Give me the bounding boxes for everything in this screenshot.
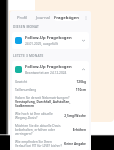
staticText: LETZTE 3 MONATE (13, 54, 44, 58)
staticText: Möchten Sie die aktuelle Dosis beibehalt… (15, 124, 70, 136)
button[interactable]: Mehr (82, 14, 89, 21)
button[interactable]: Fragebögen (54, 14, 79, 21)
staticText: Follow-Up Fragebogen (25, 35, 72, 41)
staticText: Wie empfinden Sie Ihren Verlauf bei FIT … (15, 140, 62, 148)
staticText: DIESEN MONAT (13, 25, 40, 29)
staticText: Journal (36, 15, 51, 21)
button[interactable]: Follow-Up Fragebogen (12, 32, 89, 49)
staticText: Profil (17, 15, 28, 21)
staticText: Taillenumfang (15, 88, 73, 92)
staticText: Keine Angabe (64, 142, 86, 146)
staticText: Haben Sie derzeit Nebenwirkungen? (15, 96, 70, 100)
staticText: 110cm (75, 88, 86, 92)
staticText: 2,5mg/Woche (64, 114, 86, 118)
staticText: 120kg (76, 80, 86, 84)
button[interactable]: Journal (32, 14, 54, 21)
button[interactable]: Profil (12, 14, 32, 21)
button[interactable]: Follow-Up Fragebogen (12, 61, 89, 78)
staticText: Follow-Up Fragebogen (25, 64, 72, 70)
staticText: Beantwortet am 24.12.2024 (25, 71, 67, 75)
staticText: Wie hoch ist Ihre aktuelle Wegovy-Dosis? (15, 112, 62, 120)
staticText: Erhöhen (72, 128, 86, 132)
staticText: 24.01.2025, ausgefüllt (25, 42, 58, 46)
staticText: Fragebögen (54, 15, 79, 21)
staticText: Verstopfung, Durchfall, Aufstoßen, Sodbr… (15, 100, 86, 108)
staticText: Gewicht (15, 80, 74, 84)
